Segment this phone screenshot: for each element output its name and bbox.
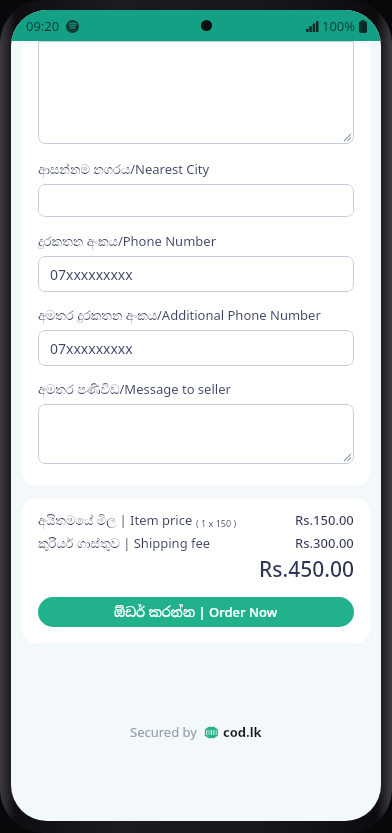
other: cod.lk logo [204, 725, 219, 740]
button[interactable] [38, 41, 354, 144]
staticText: 09:20 [26, 17, 60, 35]
staticText: 07xxxxxxxxx [50, 339, 133, 358]
button[interactable]: ඕඩර් කරන්න | Order Now [38, 597, 354, 627]
staticText: අයිතමයේ මිල | Item price [38, 511, 193, 529]
button[interactable]: 07xxxxxxxxx [38, 330, 354, 366]
staticText: කුරියර් ගාස්තුව | Shipping fee [38, 534, 295, 552]
button[interactable] [38, 404, 354, 464]
button[interactable]: 07xxxxxxxxx [38, 256, 354, 292]
staticText: ( 1 x 150 ) [196, 517, 237, 529]
staticText: 100% [322, 17, 356, 35]
staticText: Rs.300.00 [295, 534, 354, 552]
staticText: cod.lk [223, 723, 262, 741]
staticText: අමතර පණිවිඩ/Message to seller [38, 380, 231, 398]
staticText: 07xxxxxxxxx [50, 265, 133, 284]
staticText: Rs.150.00 [295, 511, 354, 529]
staticText: දුරකතන අංකය/Phone Number [38, 232, 216, 250]
staticText: අමතර දුරකතන අංකය/Additional Phone Number [38, 306, 321, 324]
button[interactable] [38, 184, 354, 217]
staticText: ආසන්නම නගරය/Nearest City [38, 160, 210, 178]
staticText: ඕඩර් කරන්න | Order Now [114, 603, 278, 621]
staticText: Rs.450.00 [259, 555, 354, 584]
staticText: Secured by [130, 723, 197, 741]
